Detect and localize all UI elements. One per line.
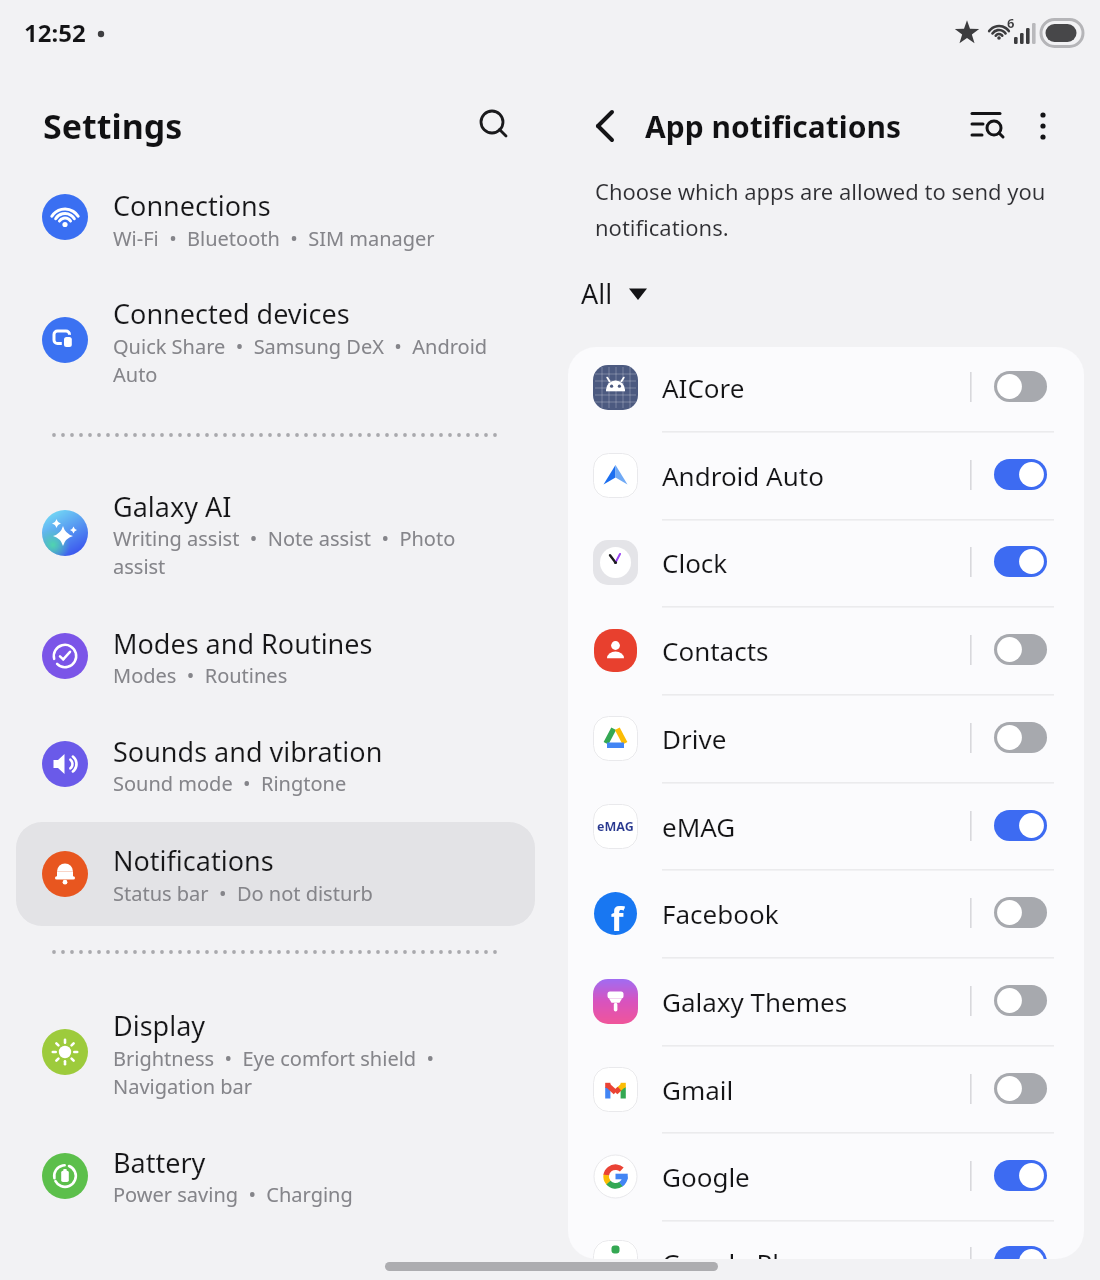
button[interactable] <box>568 1218 1084 1259</box>
staticText: 6 <box>1007 14 1015 32</box>
button[interactable] <box>994 897 1047 928</box>
button[interactable] <box>468 99 520 151</box>
button[interactable] <box>16 822 535 926</box>
staticText: Sound mode • Ringtone <box>113 770 347 797</box>
staticText: Google Play se <box>662 1245 841 1259</box>
button[interactable] <box>16 712 535 816</box>
staticText: Writing assist • Note assist • Photo ass… <box>113 525 456 580</box>
button[interactable] <box>994 985 1047 1016</box>
button[interactable] <box>994 1073 1047 1104</box>
button[interactable] <box>568 1132 1084 1220</box>
staticText: Gmail <box>662 1072 734 1107</box>
staticText: Power saving • Charging <box>113 1181 353 1208</box>
button[interactable] <box>568 347 1084 431</box>
staticText: Display <box>113 1007 206 1044</box>
staticText: Google <box>662 1159 750 1194</box>
button[interactable] <box>568 606 1084 694</box>
staticText: Quick Share • Samsung DeX • Android Auto <box>113 333 488 388</box>
staticText: AICore <box>662 370 745 405</box>
staticText: Modes • Routines <box>113 662 288 689</box>
button[interactable] <box>994 634 1047 665</box>
button[interactable] <box>994 810 1047 841</box>
staticText: Notifications <box>113 842 274 879</box>
staticText: Wi-Fi • Bluetooth • SIM manager <box>113 225 435 252</box>
button[interactable] <box>994 1246 1047 1259</box>
button[interactable] <box>994 1160 1047 1191</box>
button[interactable] <box>994 371 1047 402</box>
staticText: Choose which apps are allowed to send yo… <box>595 176 1046 206</box>
staticText: Galaxy AI <box>113 488 232 525</box>
staticText: Connections <box>113 187 271 224</box>
staticText: Brightness • Eye comfort shield • Naviga… <box>113 1045 435 1100</box>
staticText: Clock <box>662 545 728 580</box>
button[interactable] <box>568 782 1084 870</box>
staticText: Modes and Routines <box>113 625 373 662</box>
staticText: Android Auto <box>662 458 824 493</box>
button[interactable] <box>16 165 535 269</box>
button[interactable] <box>994 459 1047 490</box>
staticText: Connected devices <box>113 295 350 332</box>
button[interactable] <box>1024 100 1064 152</box>
staticText: Battery <box>113 1144 206 1181</box>
staticText: All <box>581 275 613 312</box>
staticText: Contacts <box>662 633 769 668</box>
button[interactable] <box>586 100 638 152</box>
button[interactable] <box>568 431 1084 519</box>
staticText: Facebook <box>662 896 779 931</box>
button[interactable] <box>568 518 1084 606</box>
button[interactable] <box>16 288 535 392</box>
button[interactable] <box>958 100 1010 152</box>
staticText: Galaxy Themes <box>662 984 848 1019</box>
button[interactable] <box>994 722 1047 753</box>
button[interactable] <box>16 604 535 708</box>
button[interactable] <box>16 481 535 585</box>
staticText: Sounds and vibration <box>113 733 383 770</box>
button[interactable] <box>994 546 1047 577</box>
staticText: Drive <box>662 721 727 756</box>
staticText: f <box>611 897 624 941</box>
button[interactable] <box>570 270 660 316</box>
staticText: App notifications <box>645 106 902 147</box>
staticText: 12:52 <box>24 16 86 49</box>
button[interactable] <box>16 1000 535 1104</box>
button[interactable] <box>568 869 1084 957</box>
button[interactable] <box>568 694 1084 782</box>
button[interactable] <box>568 957 1084 1045</box>
button[interactable] <box>16 1124 535 1228</box>
staticText: eMAG <box>597 818 634 835</box>
staticText: notifications. <box>595 212 729 242</box>
staticText: Status bar • Do not disturb <box>113 880 373 907</box>
button[interactable] <box>568 1045 1084 1133</box>
staticText: Settings <box>43 103 183 149</box>
staticText: eMAG <box>662 809 736 844</box>
